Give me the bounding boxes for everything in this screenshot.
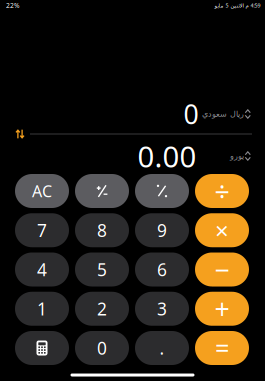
button[interactable]: −: [195, 252, 249, 286]
button[interactable]: 0.00: [0, 143, 265, 169]
staticText: AC: [32, 180, 52, 202]
button[interactable]: 2: [75, 292, 129, 326]
staticText: 3: [157, 297, 167, 320]
button[interactable]: 9: [135, 213, 189, 247]
staticText: 5: [97, 258, 107, 281]
staticText: 7: [37, 219, 47, 242]
button[interactable]: +: [195, 292, 249, 326]
button[interactable]: 3: [135, 292, 189, 326]
staticText: 4:59 م الاثنين 5 مايو: [214, 2, 260, 9]
staticText: ×: [215, 214, 229, 246]
button[interactable]: Toggle sign: [75, 174, 129, 208]
button[interactable]: Keypad: [15, 331, 69, 365]
button[interactable]: 4: [15, 252, 69, 286]
button[interactable]: .: [135, 331, 189, 365]
button[interactable]: 8: [75, 213, 129, 247]
button[interactable]: 7: [15, 213, 69, 247]
staticText: =: [215, 331, 229, 365]
staticText: −: [214, 252, 229, 287]
staticText: 9: [157, 219, 167, 242]
staticText: 0.00: [138, 136, 197, 175]
button[interactable]: Swap currencies: [10, 128, 30, 140]
staticText: ÷: [214, 173, 229, 209]
staticText: .: [159, 336, 164, 359]
staticText: 0: [97, 336, 107, 359]
button[interactable]: Percent: [135, 174, 189, 208]
staticText: 2: [97, 297, 107, 320]
button[interactable]: 0: [0, 101, 265, 127]
button[interactable]: ÷: [195, 174, 249, 208]
button[interactable]: 1: [15, 292, 69, 326]
staticText: ريال سعودي: [202, 109, 244, 119]
staticText: 6: [157, 258, 167, 281]
button[interactable]: ×: [195, 213, 249, 247]
button[interactable]: =: [195, 331, 249, 365]
staticText: 4: [37, 258, 47, 281]
button[interactable]: AC: [15, 174, 69, 208]
button[interactable]: 6: [135, 252, 189, 286]
button[interactable]: 0: [75, 331, 129, 365]
staticText: +: [214, 291, 229, 326]
staticText: يورو: [230, 151, 244, 161]
staticText: 0: [184, 96, 199, 132]
button[interactable]: 5: [75, 252, 129, 286]
staticText: 22%: [6, 1, 20, 10]
staticText: 8: [97, 219, 107, 242]
staticText: 1: [37, 297, 47, 320]
